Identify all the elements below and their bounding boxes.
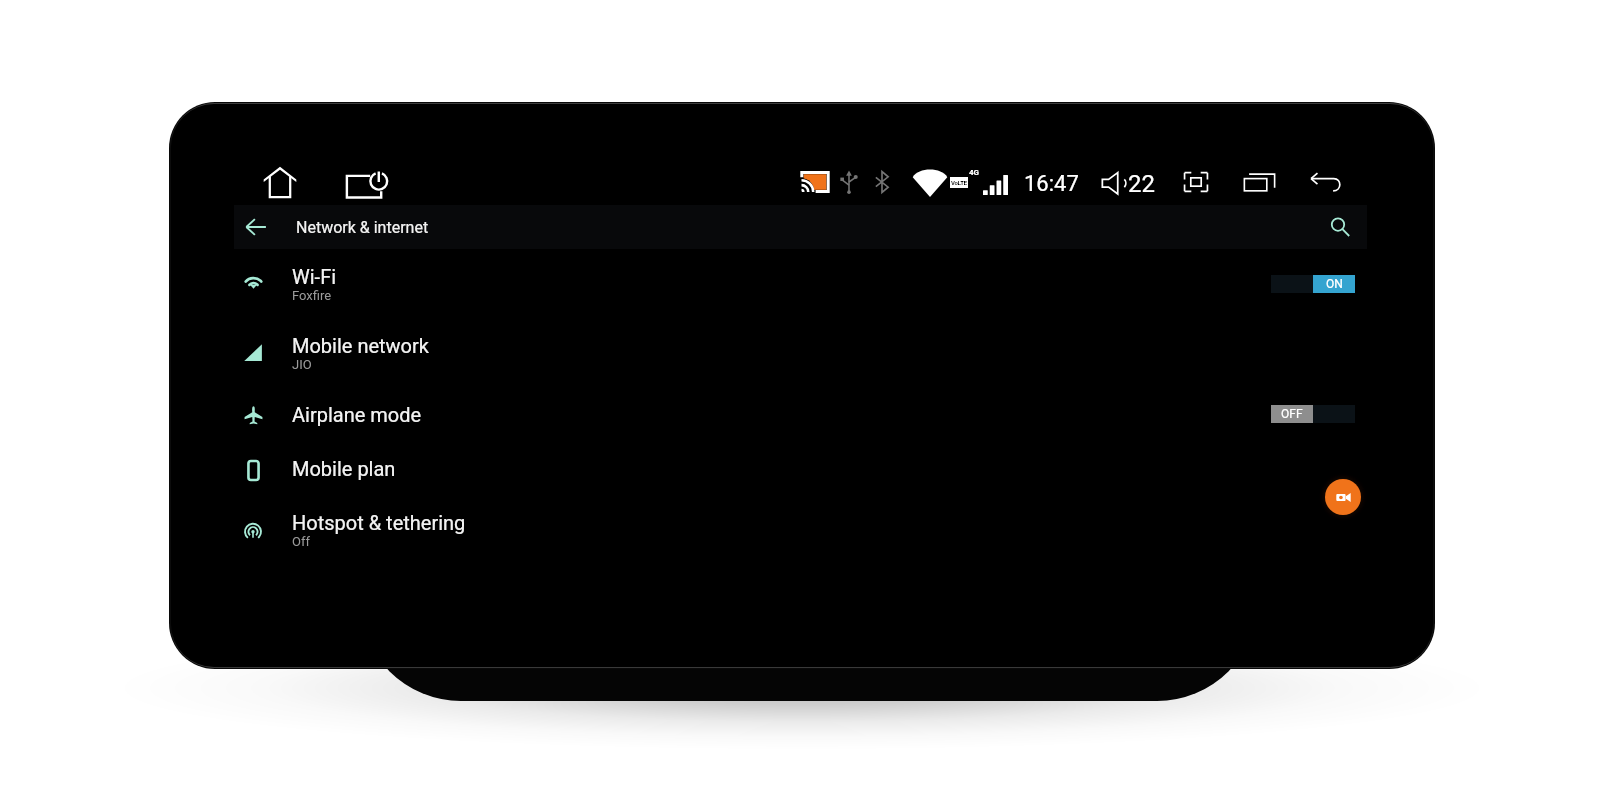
button[interactable]: Mobile plan: [178, 441, 1430, 495]
button[interactable]: Screenshot: [1174, 160, 1218, 204]
staticText: Network & internet: [296, 218, 429, 237]
staticText: ON: [1326, 277, 1343, 291]
staticText: JIO: [292, 357, 312, 372]
button[interactable]: Home: [256, 158, 304, 206]
staticText: 4G: [969, 168, 980, 177]
button[interactable]: Search: [1318, 205, 1362, 249]
staticText: OFF: [1281, 407, 1303, 421]
staticText: Foxfire: [292, 288, 332, 303]
button[interactable]: Mobile network: [178, 318, 1430, 387]
button[interactable]: On: [1271, 275, 1355, 293]
button[interactable]: Navigate up: [234, 205, 278, 249]
button[interactable]: Off: [1271, 405, 1355, 423]
staticText: Airplane mode: [292, 403, 422, 426]
button[interactable]: Hotspot & tethering: [178, 495, 1430, 564]
staticText: Off: [292, 534, 310, 549]
staticText: Mobile plan: [292, 457, 396, 480]
button[interactable]: Back: [1305, 160, 1349, 204]
button[interactable]: Wi-Fi: [178, 249, 1430, 318]
button[interactable]: Turn screen off: [344, 160, 392, 208]
staticText: Hotspot & tethering: [292, 511, 466, 534]
staticText: 16:47: [1024, 171, 1079, 197]
staticText: Mobile network: [292, 334, 429, 357]
button[interactable]: Record video: [1325, 479, 1361, 515]
button[interactable]: Recent apps: [1238, 160, 1282, 204]
staticText: 22: [1128, 170, 1155, 198]
button[interactable]: Airplane mode: [178, 387, 1430, 441]
staticText: VoLTE: [951, 179, 967, 186]
staticText: Wi-Fi: [292, 265, 337, 288]
